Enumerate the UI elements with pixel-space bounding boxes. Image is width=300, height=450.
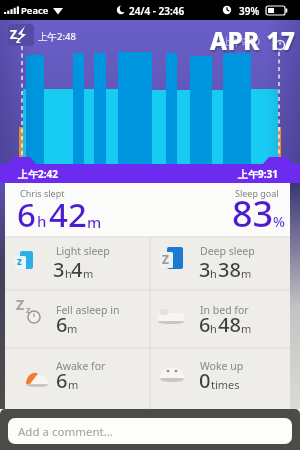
staticText: Awake for <box>56 359 106 373</box>
button[interactable] <box>8 24 34 46</box>
staticText: h <box>210 321 217 336</box>
staticText: Chris slept <box>20 187 65 199</box>
staticText: 83 <box>232 189 274 238</box>
button[interactable] <box>5 294 150 351</box>
staticText: z <box>16 33 21 45</box>
staticText: 6 <box>199 311 211 338</box>
staticText: In bed for <box>200 303 249 317</box>
button[interactable] <box>5 237 150 294</box>
staticText: Deep sleep <box>200 244 255 258</box>
staticText: h <box>210 266 217 281</box>
staticText: times <box>211 377 240 392</box>
staticText: 6 <box>17 192 36 237</box>
staticText: m <box>241 321 252 336</box>
staticText: 4 <box>71 256 83 283</box>
staticText: 6 <box>56 367 68 394</box>
staticText: 上午9:10 <box>222 35 260 48</box>
staticText: 38 <box>218 256 241 283</box>
staticText: Woke up <box>200 359 244 373</box>
staticText: m <box>68 377 79 392</box>
staticText: Peace <box>21 4 49 17</box>
staticText: h <box>37 211 47 231</box>
staticText: 0 <box>199 367 211 394</box>
staticText: z <box>17 254 22 268</box>
staticText: m <box>67 321 78 336</box>
staticText: 24/4 - 23:46 <box>129 4 185 18</box>
button[interactable] <box>150 237 295 294</box>
staticText: Light sleep <box>56 244 110 258</box>
staticText: % <box>273 212 285 231</box>
button[interactable] <box>8 418 292 444</box>
staticText: 3 <box>53 256 65 283</box>
staticText: 上午9:31 <box>238 167 278 181</box>
staticText: z <box>26 303 31 315</box>
staticText: 6 <box>56 311 68 338</box>
staticText: APR 17 <box>210 24 296 57</box>
staticText: 42 <box>49 192 87 237</box>
staticText: h <box>65 266 72 281</box>
staticText: 3 <box>199 256 211 283</box>
staticText: Z <box>10 26 17 42</box>
button[interactable] <box>150 294 295 351</box>
button[interactable] <box>150 351 295 408</box>
staticText: Sleep goal <box>235 187 279 199</box>
staticText: m <box>83 266 94 281</box>
staticText: 48 <box>218 311 241 338</box>
staticText: 上午2:48 <box>38 30 76 43</box>
staticText: Add a comment... <box>18 424 113 440</box>
button[interactable] <box>5 351 150 408</box>
staticText: m <box>241 266 252 281</box>
staticText: m <box>87 212 102 232</box>
staticText: Z <box>162 251 169 267</box>
staticText: Fell asleep in <box>56 303 120 317</box>
staticText: Z <box>16 295 25 314</box>
staticText: 39% <box>239 4 260 18</box>
staticText: 上午2:42 <box>18 167 58 181</box>
